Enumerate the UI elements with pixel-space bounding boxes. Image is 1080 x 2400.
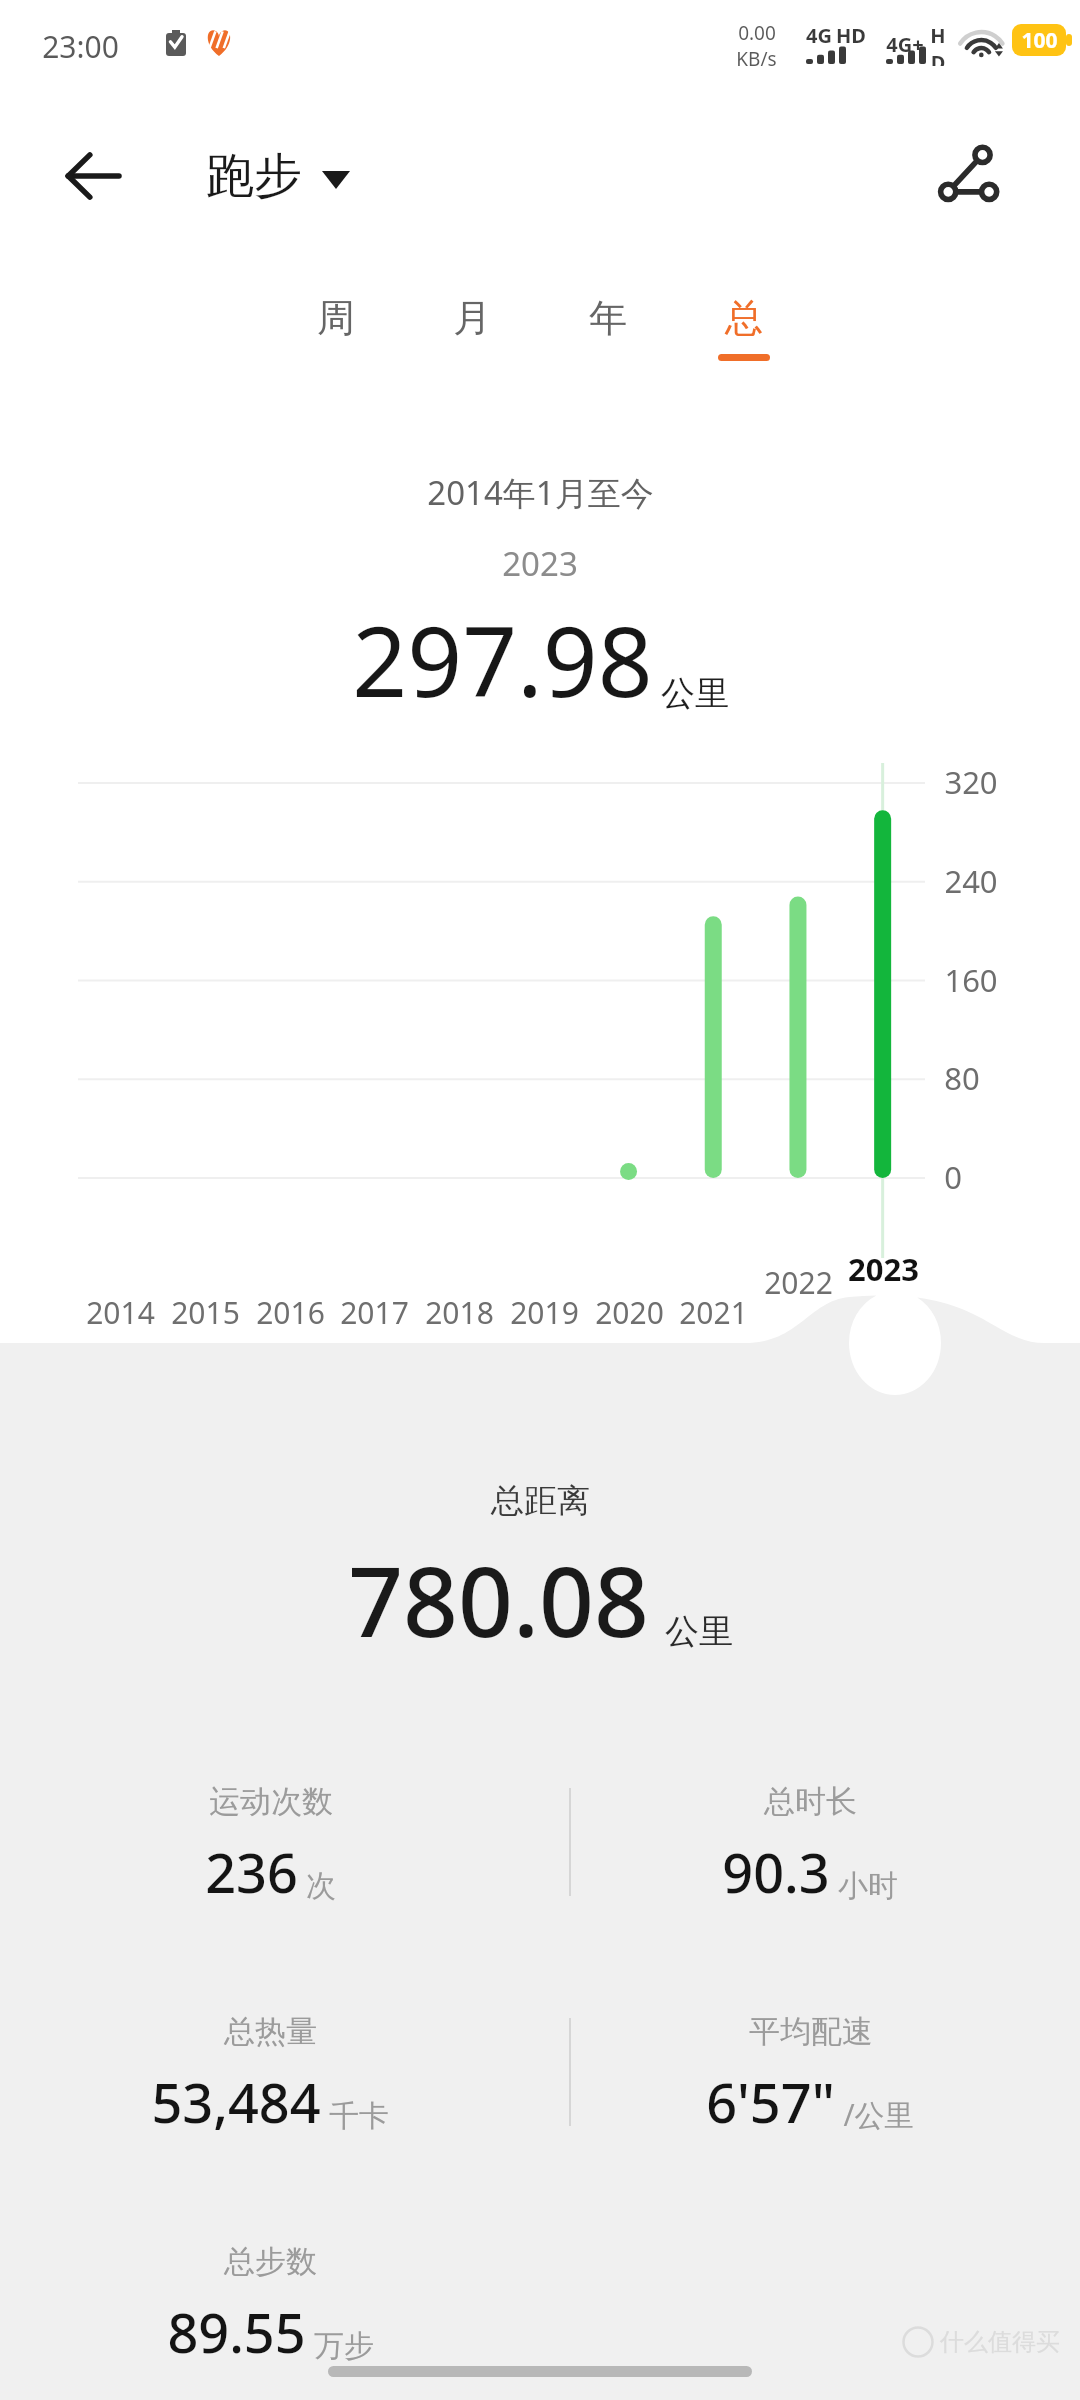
staticText: 0.00 [738,20,776,46]
staticText: 53,484 [151,2065,321,2139]
staticText: 总热量 [224,2012,317,2051]
button[interactable]: 总时长 [540,1760,1080,1940]
button[interactable]: 总步数 [0,2220,540,2400]
staticText: 160 [944,959,998,1001]
button[interactable]: 年 [556,286,660,390]
staticText: 2014年1月至今 [427,470,654,515]
button[interactable]: 总热量 [0,1990,540,2170]
staticText: 千卡 [329,2097,389,2135]
staticText: 6'57" [706,2065,835,2139]
staticText: /公里 [843,2094,915,2135]
staticText: HD [928,22,948,66]
staticText: 运动次数 [209,1782,333,1821]
staticText: 2015 [171,1292,240,1333]
staticText: 2017 [340,1292,409,1333]
staticText: 2018 [425,1292,494,1333]
staticText: KB/s [736,46,777,72]
staticText: 2022 [764,1262,833,1303]
staticText: 2021 [679,1292,748,1333]
staticText: 总 [725,294,763,342]
staticText: 100 [1021,26,1058,55]
staticText: 0 [944,1156,962,1198]
staticText: 公里 [665,1610,733,1653]
button[interactable]: 总 [692,286,796,390]
staticText: 周 [317,294,355,342]
staticText: 320 [944,761,998,803]
staticText: 公里 [661,672,729,715]
staticText: 4G+ [886,31,924,58]
staticText: 2020 [595,1292,664,1333]
button[interactable]: 跑步 [206,128,350,224]
staticText: 2014 [86,1292,155,1333]
staticText: 跑步 [206,146,302,206]
button[interactable]: Share [900,128,1036,224]
staticText: 次 [306,1867,336,1905]
staticText: 总步数 [224,2242,317,2281]
staticText: 平均配速 [749,2012,873,2051]
button[interactable]: 周 [284,286,388,390]
button[interactable]: 月 [420,286,524,390]
staticText: 小时 [838,1867,898,1905]
staticText: 万步 [314,2327,374,2365]
button[interactable]: 平均配速 [540,1990,1080,2170]
button[interactable]: 运动次数 [0,1760,540,1940]
staticText: 297.98 [352,594,653,725]
staticText: 236 [205,1835,298,1909]
staticText: HD [836,22,866,49]
staticText: 80 [944,1057,980,1099]
staticText: 总时长 [764,1782,857,1821]
staticText: 90.3 [722,1835,830,1909]
staticText: 780.08 [348,1534,649,1665]
staticText: 月 [453,294,491,342]
staticText: 4G [806,22,832,49]
staticText: 2023 [848,1248,919,1290]
staticText: 2016 [256,1292,325,1333]
staticText: 总距离 [491,1480,590,1522]
staticText: 2019 [510,1292,579,1333]
staticText: 2023 [502,541,578,586]
button[interactable]: Back [44,128,140,224]
staticText: 89.55 [167,2295,306,2369]
staticText: 年 [589,294,627,342]
staticText: 240 [944,860,998,902]
staticText: 23:00 [42,26,119,67]
staticText: 什么值得买 [940,2327,1060,2357]
